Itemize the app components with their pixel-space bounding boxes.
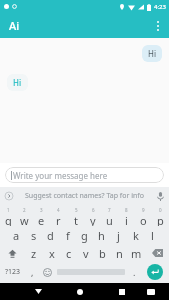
button[interactable]: 6 <box>84 207 101 226</box>
staticText: 4:23 <box>154 3 166 11</box>
button[interactable]: Emoji <box>39 262 55 282</box>
button[interactable]: Period <box>127 262 141 282</box>
button[interactable]: 3 <box>33 207 50 226</box>
button[interactable]: l <box>144 226 161 244</box>
staticText: ?123 <box>5 267 21 277</box>
staticText: Ai <box>9 18 20 33</box>
button[interactable]: a <box>8 226 25 244</box>
button[interactable]: m <box>128 244 145 262</box>
staticText: g <box>81 228 88 243</box>
button[interactable]: Recents <box>109 283 135 300</box>
button[interactable]: Switch keyboard <box>138 283 164 300</box>
button[interactable]: Expand suggestions <box>0 187 18 205</box>
staticText: h <box>98 228 105 243</box>
button[interactable]: b <box>94 244 111 262</box>
button[interactable]: Voice input <box>151 187 169 205</box>
staticText: q <box>5 213 12 226</box>
button[interactable]: k <box>127 226 144 244</box>
button[interactable]: Comma <box>25 262 39 282</box>
button[interactable]: Backspace <box>145 244 169 262</box>
staticText: w <box>20 213 29 226</box>
button[interactable]: h <box>93 226 110 244</box>
button[interactable]: Shift <box>0 244 25 262</box>
button[interactable]: Hi <box>7 74 28 91</box>
button[interactable]: More options <box>147 13 169 38</box>
button[interactable]: Home <box>67 283 93 300</box>
button[interactable]: Back <box>25 283 51 300</box>
button[interactable]: 5 <box>67 207 84 226</box>
staticText: s <box>31 228 37 243</box>
button[interactable]: c <box>60 244 77 262</box>
button[interactable]: Suggest contact names? Tap for info <box>25 191 144 201</box>
staticText: e <box>38 213 45 226</box>
staticText: Hi <box>13 77 22 88</box>
staticText: 3 <box>40 207 43 213</box>
staticText: m <box>131 246 142 261</box>
button[interactable]: x <box>43 244 60 262</box>
staticText: r <box>56 213 61 226</box>
staticText: u <box>106 213 113 226</box>
button[interactable]: Hi <box>142 45 162 62</box>
staticText: y <box>90 213 96 226</box>
button[interactable]: 0 <box>152 207 169 226</box>
button[interactable]: 2 <box>16 207 33 226</box>
button[interactable]: f <box>59 226 76 244</box>
staticText: j <box>117 228 120 243</box>
staticText: z <box>31 246 37 261</box>
staticText: o <box>140 213 147 226</box>
staticText: t <box>74 213 78 226</box>
staticText: l <box>151 228 154 243</box>
button[interactable]: z <box>25 244 43 262</box>
staticText: 6 <box>92 207 95 213</box>
button[interactable]: 8 <box>118 207 135 226</box>
button[interactable]: Send <box>141 262 169 282</box>
staticText: Write your message here <box>13 170 108 181</box>
staticText: a <box>13 228 20 243</box>
button[interactable]: ?123 <box>0 262 25 282</box>
staticText: , <box>31 266 34 278</box>
staticText: 9 <box>142 207 145 213</box>
staticText: b <box>99 246 106 261</box>
button[interactable]: d <box>42 226 59 244</box>
staticText: f <box>66 228 70 243</box>
button[interactable]: j <box>110 226 127 244</box>
staticText: Hi <box>148 48 156 59</box>
staticText: 5 <box>75 207 78 213</box>
staticText: d <box>47 228 54 243</box>
staticText: k <box>133 228 139 243</box>
staticText: 4 <box>57 207 60 213</box>
button[interactable]: 1 <box>0 207 16 226</box>
button[interactable]: s <box>25 226 42 244</box>
staticText: 2 <box>23 207 26 213</box>
staticText: n <box>116 246 123 261</box>
button[interactable]: Write your message here <box>5 167 164 183</box>
staticText: c <box>66 246 72 261</box>
button[interactable]: 7 <box>101 207 118 226</box>
staticText: i <box>125 213 128 226</box>
button[interactable]: n <box>111 244 128 262</box>
staticText: v <box>83 246 89 261</box>
button[interactable]: g <box>76 226 93 244</box>
staticText: 8 <box>125 207 128 213</box>
button[interactable]: 9 <box>135 207 152 226</box>
staticText: 7 <box>108 207 111 213</box>
staticText: p <box>157 213 164 226</box>
staticText: 1 <box>7 207 10 213</box>
staticText: 0 <box>159 207 162 213</box>
button[interactable]: 4 <box>50 207 67 226</box>
staticText: . <box>133 266 136 278</box>
staticText: x <box>49 246 55 261</box>
button[interactable]: Space <box>55 262 127 282</box>
button[interactable]: v <box>77 244 94 262</box>
